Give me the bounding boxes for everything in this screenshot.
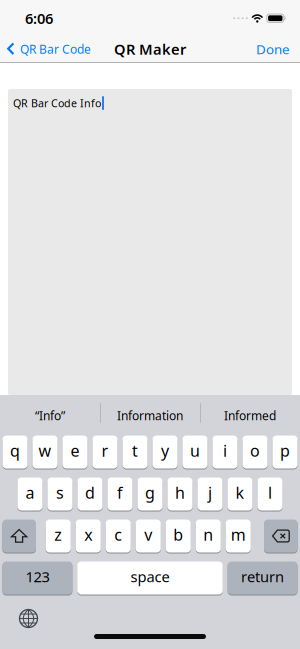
button[interactable]: “Info” <box>0 395 100 431</box>
staticText: Information <box>117 407 183 423</box>
button[interactable]: j <box>197 477 223 511</box>
staticText: w <box>38 440 51 461</box>
staticText: i <box>223 440 227 461</box>
staticText: y <box>161 440 169 461</box>
button[interactable]: space <box>77 561 223 595</box>
button[interactable]: m <box>226 519 251 553</box>
staticText: j <box>208 482 212 503</box>
staticText: Done <box>256 40 290 58</box>
button[interactable]: Delete <box>264 519 298 553</box>
button[interactable]: q <box>2 435 28 469</box>
button[interactable]: b <box>166 519 191 553</box>
staticText: q <box>10 440 20 461</box>
staticText: h <box>175 482 185 503</box>
button[interactable]: t <box>122 435 148 469</box>
staticText: space <box>130 567 169 586</box>
staticText: v <box>144 524 152 545</box>
staticText: l <box>268 482 272 503</box>
staticText: return <box>241 567 284 586</box>
button[interactable]: v <box>136 519 161 553</box>
button[interactable]: Next keyboard <box>0 595 38 628</box>
staticText: o <box>250 440 260 461</box>
staticText: a <box>25 482 34 503</box>
staticText: f <box>117 482 123 503</box>
staticText: QR Bar Code Info <box>13 96 101 110</box>
button[interactable]: i <box>212 435 238 469</box>
button[interactable]: u <box>182 435 208 469</box>
button[interactable]: r <box>92 435 118 469</box>
staticText: u <box>190 440 200 461</box>
button[interactable]: y <box>152 435 178 469</box>
button[interactable]: w <box>32 435 58 469</box>
button[interactable]: l <box>257 477 283 511</box>
button[interactable]: return <box>228 561 298 595</box>
button[interactable]: c <box>106 519 131 553</box>
staticText: 123 <box>25 567 49 586</box>
staticText: Informed <box>224 407 276 423</box>
button[interactable]: g <box>137 477 163 511</box>
staticText: x <box>84 524 92 545</box>
button[interactable]: k <box>227 477 253 511</box>
button[interactable]: d <box>77 477 103 511</box>
staticText: m <box>231 524 246 545</box>
staticText: z <box>54 524 62 545</box>
button[interactable]: x <box>76 519 101 553</box>
button[interactable]: Informed <box>200 395 300 431</box>
staticText: c <box>114 524 122 545</box>
button[interactable]: 123 <box>2 561 72 595</box>
staticText: p <box>280 440 290 461</box>
button[interactable]: p <box>272 435 298 469</box>
staticText: n <box>203 524 213 545</box>
button[interactable]: e <box>62 435 88 469</box>
button[interactable]: Done <box>256 40 300 58</box>
button[interactable]: n <box>196 519 221 553</box>
button[interactable]: Information <box>100 395 200 431</box>
staticText: d <box>85 482 95 503</box>
button[interactable]: o <box>242 435 268 469</box>
staticText: e <box>70 440 79 461</box>
staticText: g <box>145 482 155 503</box>
staticText: QR Bar Code <box>20 41 91 57</box>
staticText: 6:06 <box>25 8 53 28</box>
staticText: k <box>235 482 244 503</box>
staticText: r <box>101 440 108 461</box>
button[interactable]: h <box>167 477 193 511</box>
staticText: s <box>56 482 64 503</box>
staticText: “Info” <box>35 407 65 423</box>
button[interactable]: s <box>47 477 73 511</box>
button[interactable]: a <box>17 477 43 511</box>
button[interactable]: f <box>107 477 133 511</box>
staticText: t <box>132 440 138 461</box>
button[interactable]: QR Bar Code <box>0 41 91 57</box>
staticText: b <box>173 524 183 545</box>
button[interactable]: z <box>46 519 71 553</box>
button[interactable]: Shift <box>2 519 36 553</box>
staticText: QR Maker <box>114 39 186 59</box>
